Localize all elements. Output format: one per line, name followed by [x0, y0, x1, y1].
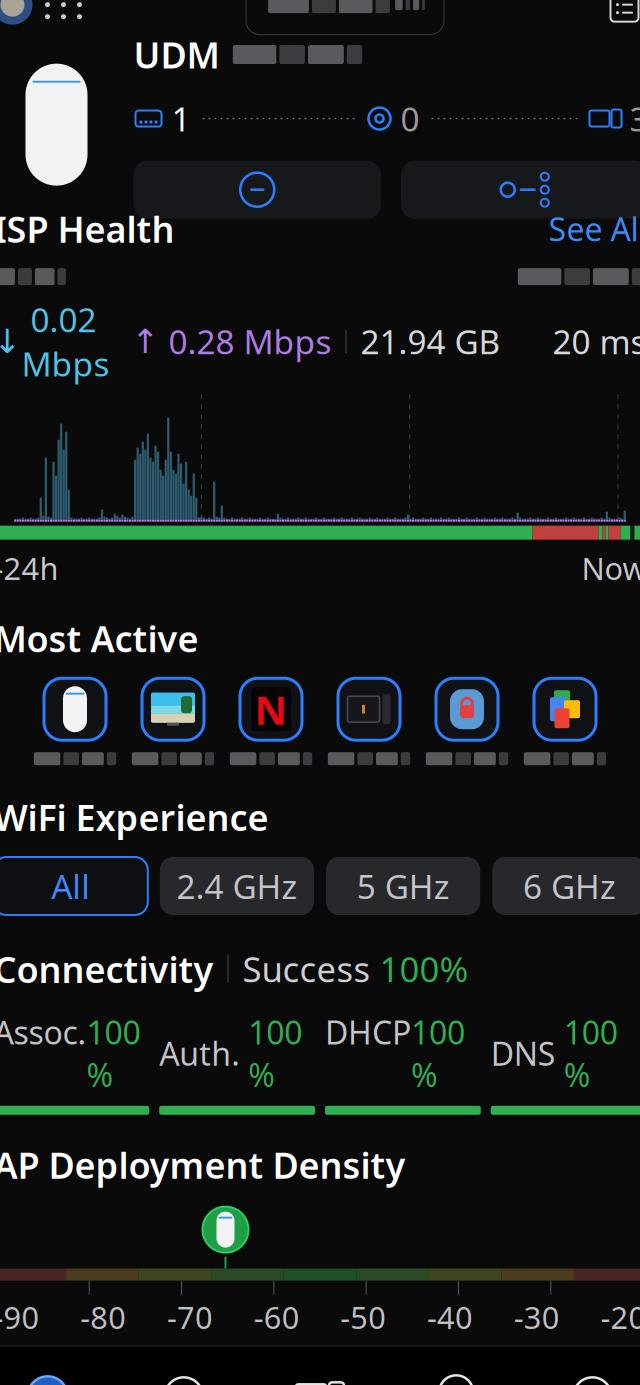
- staticText: 5 GHz: [357, 864, 450, 908]
- staticText: -70: [167, 1297, 213, 1337]
- staticText: N: [254, 683, 287, 736]
- staticText: Auth.: [159, 1032, 248, 1075]
- staticText: Now: [581, 548, 640, 588]
- staticText: 3: [629, 96, 640, 141]
- button[interactable]: [323, 676, 415, 765]
- staticText: 6 GHz: [523, 864, 616, 908]
- staticText: 21.94 GB: [360, 319, 500, 364]
- button[interactable]: Account: [0, 0, 35, 28]
- button[interactable]: [246, 0, 444, 35]
- staticText: WiFi Experience: [0, 793, 268, 841]
- staticText: -24h: [0, 548, 58, 588]
- staticText: 0.28 Mbps: [159, 319, 331, 364]
- staticText: 0: [400, 96, 419, 141]
- button[interactable]: WiFi: [116, 1360, 252, 1385]
- button[interactable]: Topology: [401, 161, 640, 219]
- staticText: -40: [427, 1297, 473, 1337]
- button[interactable]: 5 GHz: [326, 857, 480, 915]
- staticText: 100%: [86, 1011, 140, 1096]
- staticText: -90: [0, 1297, 39, 1337]
- staticText: 100%: [248, 1011, 302, 1096]
- button[interactable]: Insights: [388, 1360, 524, 1385]
- staticText: All: [51, 864, 90, 908]
- staticText: ↑: [109, 322, 159, 360]
- staticText: DHCP: [325, 1011, 411, 1096]
- button[interactable]: [421, 676, 513, 765]
- button[interactable]: Dashboard: [0, 1360, 116, 1385]
- staticText: -50: [340, 1297, 386, 1337]
- staticText: 1: [171, 96, 190, 141]
- button[interactable]: Devices: [252, 1360, 388, 1385]
- button[interactable]: Apps: [35, 0, 91, 28]
- staticText: UDM: [133, 31, 219, 78]
- button[interactable]: [519, 676, 611, 765]
- button[interactable]: N: [225, 676, 317, 765]
- staticText: Success: [242, 946, 379, 992]
- staticText: -20: [600, 1297, 640, 1337]
- staticText: DNS: [491, 1032, 564, 1075]
- button[interactable]: [127, 676, 219, 765]
- staticText: -80: [80, 1297, 126, 1337]
- button[interactable]: 2.4 GHz: [160, 857, 314, 915]
- staticText: Connectivity: [0, 945, 213, 993]
- staticText: Most Active: [0, 614, 198, 662]
- staticText: ISP Health: [0, 205, 174, 253]
- button[interactable]: See All: [528, 204, 640, 254]
- staticText: 100%: [411, 1011, 465, 1096]
- button[interactable]: All: [0, 857, 148, 915]
- staticText: 0.02 Mbps: [21, 297, 109, 386]
- staticText: 100%: [379, 946, 468, 992]
- button[interactable]: [29, 676, 121, 765]
- button[interactable]: Speed Test: [133, 161, 381, 219]
- staticText: 100%: [564, 1011, 618, 1096]
- staticText: ↓: [0, 322, 21, 360]
- button[interactable]: 6 GHz: [492, 857, 640, 915]
- staticText: -60: [254, 1297, 300, 1337]
- button[interactable]: Settings: [524, 1360, 640, 1385]
- staticText: -30: [514, 1297, 560, 1337]
- staticText: Assoc.: [0, 1011, 86, 1096]
- staticText: 2.4 GHz: [176, 864, 297, 908]
- staticText: 20 ms: [552, 319, 640, 364]
- staticText: See All: [548, 208, 640, 250]
- button[interactable]: Notes: [598, 0, 640, 31]
- staticText: AP Deployment Density: [0, 1141, 405, 1189]
